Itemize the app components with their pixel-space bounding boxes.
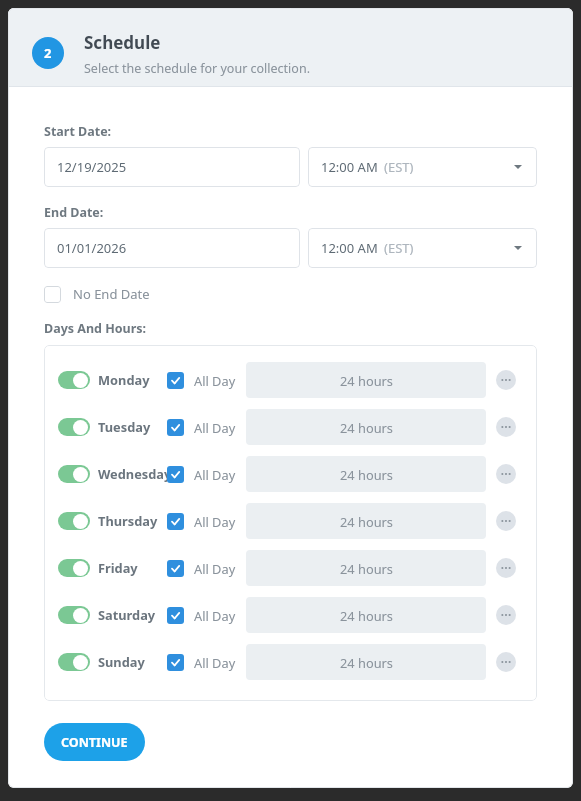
staticText: 24 hours [340, 513, 393, 530]
staticText: 12:00 AM [321, 239, 378, 257]
staticText: All Day [194, 466, 236, 483]
button[interactable]: Toggle Saturday [58, 606, 90, 624]
button[interactable]: Toggle Sunday [58, 653, 90, 671]
staticText: 01/01/2026 [57, 239, 127, 257]
button[interactable]: Toggle Wednesday [58, 465, 90, 483]
button[interactable]: 24 hours [246, 644, 486, 680]
staticText: Monday [98, 371, 150, 388]
button[interactable]: All Day [167, 601, 236, 629]
staticText: Saturday [98, 606, 156, 623]
button[interactable]: Toggle Thursday [58, 512, 90, 530]
staticText: 24 hours [340, 654, 393, 671]
staticText: (EST) [384, 239, 414, 257]
staticText: 24 hours [340, 560, 393, 577]
button[interactable]: All Day [167, 648, 236, 676]
button[interactable]: 24 hours [246, 597, 486, 633]
staticText: All Day [194, 560, 236, 577]
button[interactable]: All Day [167, 413, 236, 441]
button[interactable]: 24 hours [246, 456, 486, 492]
button[interactable]: 24 hours [246, 362, 486, 398]
button[interactable]: 24 hours [246, 409, 486, 445]
staticText: Days And Hours: [44, 320, 147, 337]
staticText: Sunday [98, 653, 145, 670]
button[interactable]: More options for Sunday [496, 652, 516, 672]
button[interactable]: 12:00 AM [308, 147, 537, 187]
button[interactable]: More options for Friday [496, 558, 516, 578]
staticText: All Day [194, 654, 236, 671]
staticText: (EST) [384, 158, 414, 176]
button[interactable]: More options for Thursday [496, 511, 516, 531]
button[interactable]: Toggle Tuesday [58, 418, 90, 436]
button[interactable]: 12/19/2025 [44, 147, 300, 187]
button[interactable]: 24 hours [246, 503, 486, 539]
button[interactable]: 24 hours [246, 550, 486, 586]
staticText: All Day [194, 372, 236, 389]
staticText: All Day [194, 513, 236, 530]
button[interactable]: More options for Tuesday [496, 417, 516, 437]
staticText: All Day [194, 419, 236, 436]
button[interactable]: CONTINUE [44, 723, 145, 761]
button[interactable]: More options for Wednesday [496, 464, 516, 484]
staticText: Wednesday [98, 465, 172, 482]
button[interactable]: All Day [167, 554, 236, 582]
button[interactable]: No End Date [44, 282, 150, 306]
staticText: 24 hours [340, 372, 393, 389]
button[interactable]: 01/01/2026 [44, 228, 300, 268]
staticText: 24 hours [340, 466, 393, 483]
staticText: 24 hours [340, 419, 393, 436]
staticText: 12/19/2025 [57, 158, 127, 176]
staticText: Thursday [98, 512, 158, 529]
staticText: 24 hours [340, 607, 393, 624]
staticText: No End Date [73, 285, 150, 303]
staticText: CONTINUE [61, 734, 128, 751]
button[interactable]: Toggle Monday [58, 371, 90, 389]
button[interactable]: More options for Monday [496, 370, 516, 390]
staticText: 12:00 AM [321, 158, 378, 176]
button[interactable]: Toggle Friday [58, 559, 90, 577]
button[interactable]: All Day [167, 460, 236, 488]
staticText: All Day [194, 607, 236, 624]
staticText: Schedule [84, 31, 161, 54]
button[interactable]: More options for Saturday [496, 605, 516, 625]
staticText: Friday [98, 559, 138, 576]
staticText: Tuesday [98, 418, 151, 435]
button[interactable]: 12:00 AM [308, 228, 537, 268]
staticText: Select the schedule for your collection. [84, 60, 310, 77]
staticText: 2 [44, 44, 52, 62]
staticText: Start Date: [44, 123, 112, 140]
button[interactable]: All Day [167, 507, 236, 535]
staticText: End Date: [44, 204, 104, 221]
button[interactable]: All Day [167, 366, 236, 394]
